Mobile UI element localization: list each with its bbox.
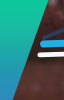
- button[interactable]: Get started: [0, 0, 64, 100]
